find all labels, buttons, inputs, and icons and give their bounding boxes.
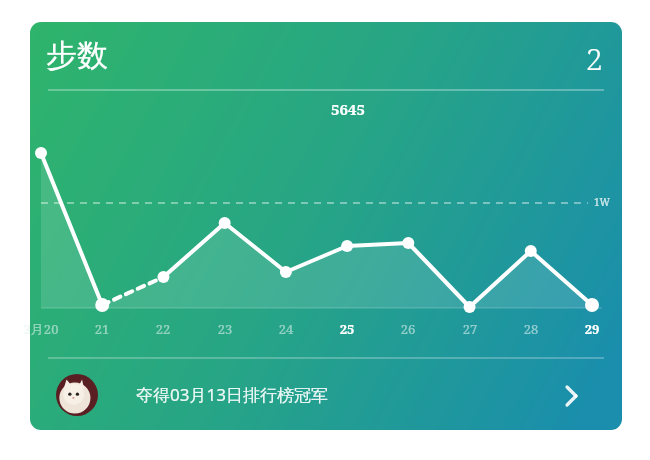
staticText: 27 (456, 320, 484, 338)
staticText: 23 (211, 320, 239, 338)
staticText: 3月20 (12, 320, 70, 338)
staticText: 5645 (313, 99, 383, 119)
button[interactable]: 查看排行榜详情 (554, 376, 594, 416)
staticText: 2 (586, 38, 603, 79)
staticText: 25 (333, 320, 361, 338)
staticText: 步数 (46, 36, 108, 75)
staticText: 22 (149, 320, 177, 338)
staticText: 夺得03月13日排行榜冠军 (136, 383, 328, 406)
button[interactable]: 夺得03月13日排行榜冠军 (30, 360, 622, 428)
staticText: 26 (394, 320, 422, 338)
staticText: 1W (594, 195, 611, 209)
staticText: 24 (272, 320, 300, 338)
staticText: 29 (578, 320, 606, 338)
staticText: 28 (517, 320, 545, 338)
staticText: 21 (88, 320, 116, 338)
